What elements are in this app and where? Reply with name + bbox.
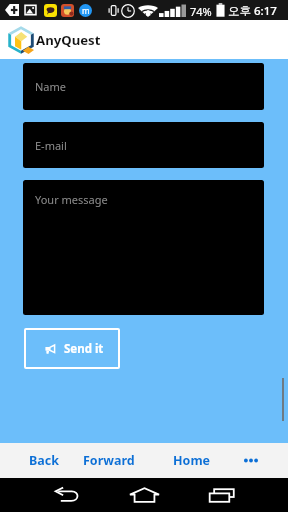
staticText: Name <box>35 79 67 94</box>
button[interactable]: AnyQuest <box>0 20 288 59</box>
staticText: 오후 6:17 <box>228 3 277 19</box>
button[interactable]: Recent apps <box>206 478 238 512</box>
staticText: Forward <box>83 452 135 469</box>
button[interactable]: Forward <box>75 443 142 478</box>
staticText: E-mail <box>35 138 67 153</box>
button[interactable]: Home <box>128 478 160 512</box>
staticText: m <box>82 5 90 16</box>
button[interactable]: E-mail <box>23 122 264 168</box>
staticText: Home <box>173 452 211 469</box>
button[interactable]: Send it <box>24 328 120 369</box>
staticText: 74% <box>190 4 212 19</box>
button[interactable]: Back <box>52 478 80 512</box>
staticText: Your message <box>35 192 108 207</box>
button[interactable]: More options <box>228 443 273 478</box>
button[interactable]: Your message <box>23 180 264 315</box>
staticText: Send it <box>64 341 104 357</box>
button[interactable]: Home <box>165 443 219 478</box>
button[interactable]: Name <box>23 63 264 110</box>
staticText: Back <box>29 452 60 469</box>
button[interactable]: Back <box>21 443 67 478</box>
staticText: AnyQuest <box>36 31 101 49</box>
